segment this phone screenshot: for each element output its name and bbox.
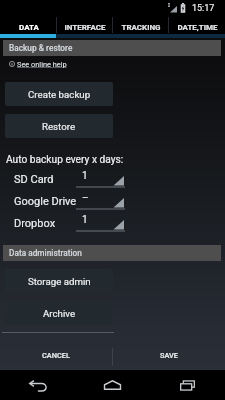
staticText: Create backup — [28, 89, 91, 100]
button[interactable]: Recents — [150, 370, 225, 400]
button[interactable]: SAVE — [113, 333, 225, 370]
staticText: CANCEL — [42, 351, 70, 360]
staticText: Auto backup every x days: — [6, 154, 124, 166]
staticText: – — [82, 192, 89, 204]
button[interactable]: See online help — [9, 57, 67, 71]
button[interactable]: Home — [75, 370, 150, 400]
staticText: Dropbox — [14, 217, 56, 230]
button[interactable]: 1 — [76, 170, 125, 188]
button[interactable]: Create backup — [5, 82, 113, 106]
staticText: Backup & restore — [9, 43, 73, 53]
staticText: DATA — [19, 23, 39, 32]
button[interactable]: Back — [0, 370, 75, 400]
staticText: Restore — [42, 121, 76, 132]
button[interactable]: Storage admin — [5, 269, 113, 293]
staticText: SD Card — [14, 173, 54, 186]
staticText: DATE,TIME — [177, 23, 218, 32]
staticText: 1 — [82, 170, 88, 182]
button[interactable]: DATA — [0, 16, 57, 34]
staticText: 15:17 — [192, 3, 215, 14]
staticText: See online help — [17, 60, 67, 69]
button[interactable]: DATE,TIME — [169, 16, 225, 34]
button[interactable]: Archive — [5, 301, 113, 325]
button[interactable]: TRACKING — [113, 16, 169, 34]
staticText: INTERFACE — [64, 23, 106, 32]
button[interactable]: – — [76, 192, 125, 210]
staticText: Storage admin — [28, 276, 91, 287]
staticText: SAVE — [160, 351, 179, 360]
staticText: Archive — [43, 308, 76, 319]
staticText: Data administration — [9, 248, 82, 258]
staticText: Google Drive — [14, 195, 77, 208]
button[interactable]: Restore — [5, 114, 113, 138]
button[interactable]: INTERFACE — [57, 16, 113, 34]
button[interactable]: CANCEL — [0, 333, 112, 370]
button[interactable]: 1 — [76, 214, 125, 232]
staticText: TRACKING — [121, 23, 161, 32]
staticText: 1 — [82, 214, 88, 226]
